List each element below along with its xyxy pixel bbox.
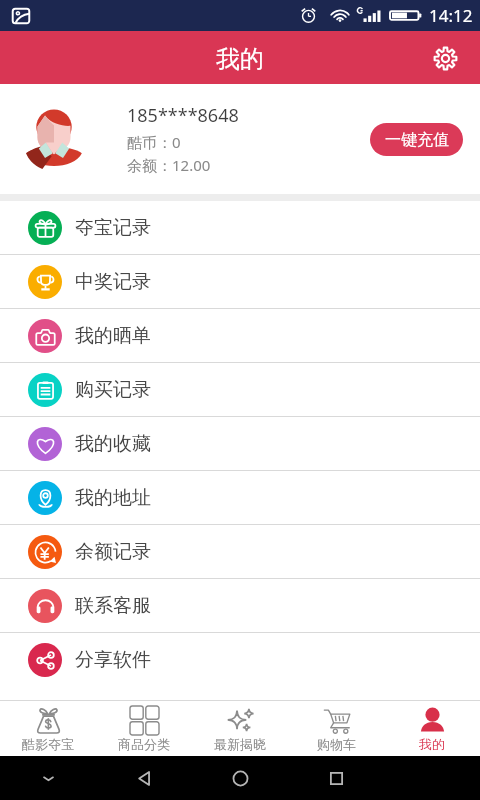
button[interactable]: 酷影夺宝 (0, 701, 96, 756)
button[interactable]: 一键充值 (370, 123, 463, 156)
staticText: 我的地址 (75, 486, 151, 510)
staticText: 分享软件 (75, 648, 151, 672)
button[interactable]: 夺宝记录 (0, 201, 480, 254)
staticText: 中奖记录 (75, 270, 151, 294)
button[interactable]: 我的地址 (0, 471, 480, 524)
button[interactable]: Home (192, 756, 288, 800)
button[interactable]: 185****8648 (0, 84, 480, 194)
staticText: 余额记录 (75, 540, 151, 564)
button[interactable]: 我的收藏 (0, 417, 480, 470)
staticText: 我的晒单 (75, 324, 151, 348)
button[interactable]: 分享软件 (0, 633, 480, 686)
button[interactable]: Settings (423, 36, 467, 80)
button[interactable]: 购买记录 (0, 363, 480, 416)
staticText: 酷影夺宝 (22, 736, 74, 752)
button[interactable]: 我的晒单 (0, 309, 480, 362)
button[interactable]: 最新揭晓 (192, 701, 288, 756)
button[interactable]: 我的 (384, 701, 480, 756)
staticText: 我的 (419, 736, 445, 752)
button[interactable]: Hide (0, 756, 96, 800)
staticText: 商品分类 (118, 736, 170, 752)
staticText: 酷币：0 (127, 132, 181, 152)
button[interactable]: 商品分类 (96, 701, 192, 756)
staticText: 我的收藏 (75, 432, 151, 456)
staticText: 联系客服 (75, 594, 151, 618)
staticText: 我的 (216, 44, 264, 74)
staticText: 最新揭晓 (214, 736, 266, 752)
staticText: 购买记录 (75, 378, 151, 402)
button[interactable]: 联系客服 (0, 579, 480, 632)
button[interactable]: Back (96, 756, 192, 800)
button[interactable]: 购物车 (288, 701, 384, 756)
button[interactable]: 余额记录 (0, 525, 480, 578)
staticText: 夺宝记录 (75, 216, 151, 240)
button[interactable]: 中奖记录 (0, 255, 480, 308)
button[interactable]: Recents (288, 756, 384, 800)
staticText: 余额：12.00 (127, 155, 211, 175)
staticText: 185****8648 (127, 103, 239, 128)
staticText: 一键充值 (385, 130, 449, 150)
staticText: 购物车 (317, 736, 356, 752)
staticText: 14:12 (429, 4, 473, 27)
